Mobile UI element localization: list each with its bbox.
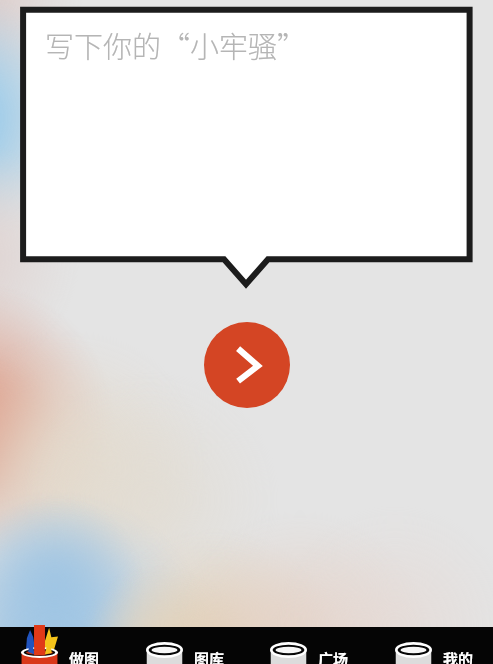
button[interactable]: 我的 xyxy=(374,627,493,664)
staticText: 做图 xyxy=(69,648,100,664)
button[interactable]: Next xyxy=(204,322,290,408)
button[interactable]: 广场 xyxy=(249,627,373,664)
staticText: 图库 xyxy=(194,648,225,664)
staticText: 我的 xyxy=(443,648,474,664)
staticText: 写下你的“小牢骚” xyxy=(45,24,307,66)
button[interactable]: 图库 xyxy=(125,627,249,664)
button[interactable]: 做图 xyxy=(0,627,124,664)
staticText: 广场 xyxy=(318,648,349,664)
